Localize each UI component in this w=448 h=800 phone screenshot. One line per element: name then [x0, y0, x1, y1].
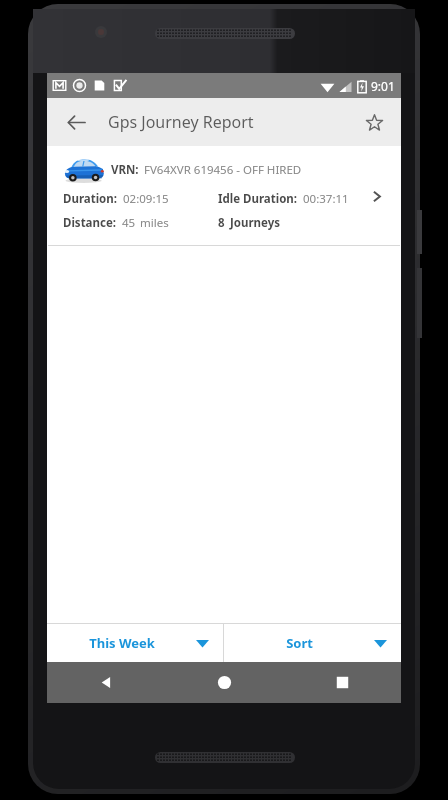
staticText: 8 — [218, 215, 225, 231]
staticText: Gps Journey Report — [108, 111, 254, 133]
button[interactable]: Back — [47, 662, 165, 703]
staticText: This Week — [89, 634, 155, 652]
other: Open details — [363, 183, 389, 209]
button[interactable]: VRN: — [47, 146, 401, 246]
staticText: Distance: — [63, 215, 117, 231]
button[interactable]: Back — [57, 103, 95, 141]
staticText: Sort — [286, 634, 313, 652]
staticText: Duration: — [63, 191, 118, 207]
staticText: FV64XVR 619456 - OFF HIRED — [144, 162, 302, 178]
staticText: miles — [140, 215, 169, 231]
button[interactable]: Recent apps — [283, 662, 401, 703]
staticText: Journeys — [230, 215, 281, 231]
staticText: VRN: — [111, 162, 139, 178]
staticText: 45 — [122, 215, 136, 231]
button[interactable]: This Week — [47, 624, 223, 662]
staticText: Idle Duration: — [218, 191, 298, 207]
staticText: 00:37:11 — [303, 191, 349, 207]
staticText: 9:01 — [371, 78, 395, 94]
button[interactable]: Favourite — [355, 103, 393, 141]
button[interactable]: Home — [165, 662, 283, 703]
staticText: 02:09:15 — [123, 191, 169, 207]
button[interactable]: Sort — [224, 624, 401, 662]
